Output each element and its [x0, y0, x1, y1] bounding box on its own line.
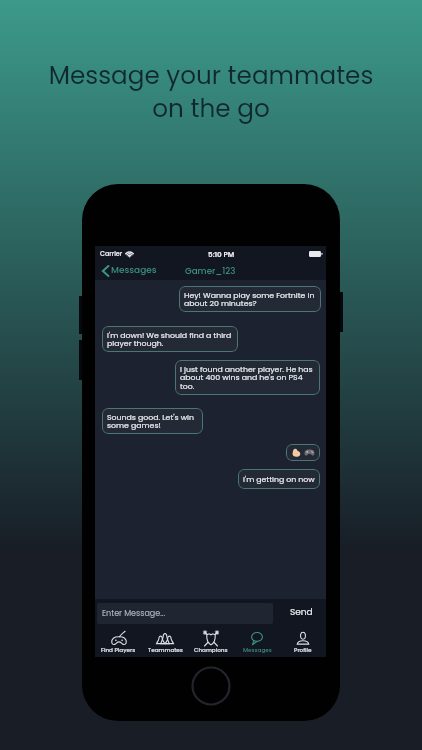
button[interactable]: Messages	[95, 262, 162, 279]
staticText: Teammates	[148, 646, 183, 654]
button[interactable]: I just found another player. He has abou…	[175, 360, 320, 395]
button[interactable]: Enter Message...	[97, 603, 273, 624]
button[interactable]: Find Players	[95, 626, 142, 657]
staticText: Message your teammates on the go	[0, 58, 422, 126]
staticText: Gamer_123	[185, 265, 236, 277]
button[interactable]: I'm down! We should find a third player …	[102, 326, 238, 352]
button[interactable]: Profile	[280, 626, 326, 657]
button[interactable]: Sounds good. Let's win some games!	[102, 408, 203, 434]
staticText: 5:10 PM	[208, 249, 235, 259]
staticText: Sounds good. Let's win some games!	[107, 412, 198, 431]
button[interactable]: Send	[282, 601, 326, 624]
staticText: Profile	[294, 646, 312, 654]
staticText: Champions	[194, 646, 228, 654]
button[interactable]: I'm getting on now	[238, 469, 320, 489]
staticText: I just found another player. He has abou…	[180, 364, 315, 392]
button[interactable]: Teammates	[142, 626, 188, 657]
button[interactable]: Emoji message: flexed biceps and game co…	[286, 444, 320, 461]
staticText: I'm getting on now	[243, 474, 315, 485]
staticText: Hey! Wanna play some Fortnite in about 2…	[184, 290, 316, 309]
button[interactable]: Hey! Wanna play some Fortnite in about 2…	[179, 286, 321, 312]
staticText: Find Players	[101, 646, 136, 654]
staticText: Messages	[243, 646, 272, 654]
staticText: Send	[290, 606, 313, 619]
button[interactable]: Messages	[234, 626, 280, 657]
staticText: Messages	[111, 264, 157, 277]
button[interactable]: Champions	[188, 626, 234, 657]
staticText: Enter Message...	[102, 608, 166, 619]
staticText: I'm down! We should find a third player …	[107, 330, 233, 349]
staticText: Carrier	[100, 249, 123, 258]
